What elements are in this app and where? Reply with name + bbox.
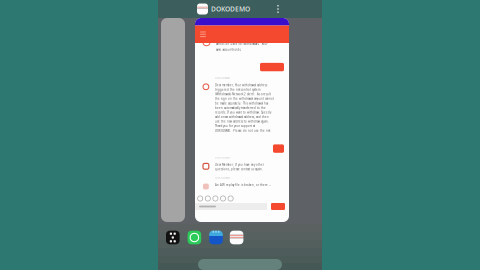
staticText: DOKODEMO [215, 156, 230, 159]
button[interactable]: cannot be used for withdrawals. Your [195, 18, 289, 222]
button[interactable]: Sent message [273, 144, 284, 153]
staticText: records. If you want to withdraw, Speedy [215, 111, 271, 114]
staticText: been automatically transferred to the [215, 106, 266, 110]
staticText: Dear Member, If you have any other [215, 163, 264, 166]
button[interactable]: Gallery [209, 231, 223, 244]
staticText: use the new address to withdraw again. [215, 120, 269, 123]
button[interactable]: App options [272, 0, 284, 18]
button[interactable]: Help [205, 194, 211, 203]
staticText: An AIR replay file is broken, or there … [215, 183, 271, 187]
staticText: DOKODEMO. Please do not use the risk [215, 129, 270, 132]
staticText: DOKODEMO [215, 76, 230, 80]
button[interactable]: DOKODEMO [197, 0, 250, 18]
button[interactable]: Like [227, 194, 234, 203]
staticText: cannot be used for withdrawals. Your [215, 42, 267, 46]
staticText: same accountholds. [215, 48, 241, 51]
staticText: the sign on the withdrawal amount cannot [215, 97, 274, 101]
button[interactable]: Menu [198, 25, 208, 43]
staticText: triggered the risk control system [215, 88, 260, 91]
staticText: (Withdrawals Network 2 alert). As a resu… [215, 92, 271, 96]
button[interactable]: Previous app [161, 18, 185, 222]
button[interactable]: Camera [212, 194, 219, 203]
button[interactable]: Attach file [220, 194, 226, 203]
staticText: Dear member, Your withdrawal address [215, 83, 267, 87]
button[interactable]: DOKODEMO [230, 231, 243, 244]
button[interactable]: Send [271, 203, 285, 210]
staticText: be made accurately. This withdrawal has [215, 102, 268, 105]
button[interactable]: Sent message [260, 63, 284, 71]
staticText: DOKODEMO [211, 5, 250, 13]
staticText: DOKODEMO [215, 176, 230, 179]
staticText: add a new withdrawal address, and then [215, 115, 269, 119]
button[interactable]: Games [166, 231, 180, 244]
staticText: Thank you for your support at [215, 124, 255, 128]
button[interactable]: Emoji [197, 194, 203, 203]
button[interactable]: Search [198, 259, 282, 270]
staticText: questions, please contact us again. [215, 167, 263, 171]
button[interactable]: WhatsApp [188, 231, 201, 244]
